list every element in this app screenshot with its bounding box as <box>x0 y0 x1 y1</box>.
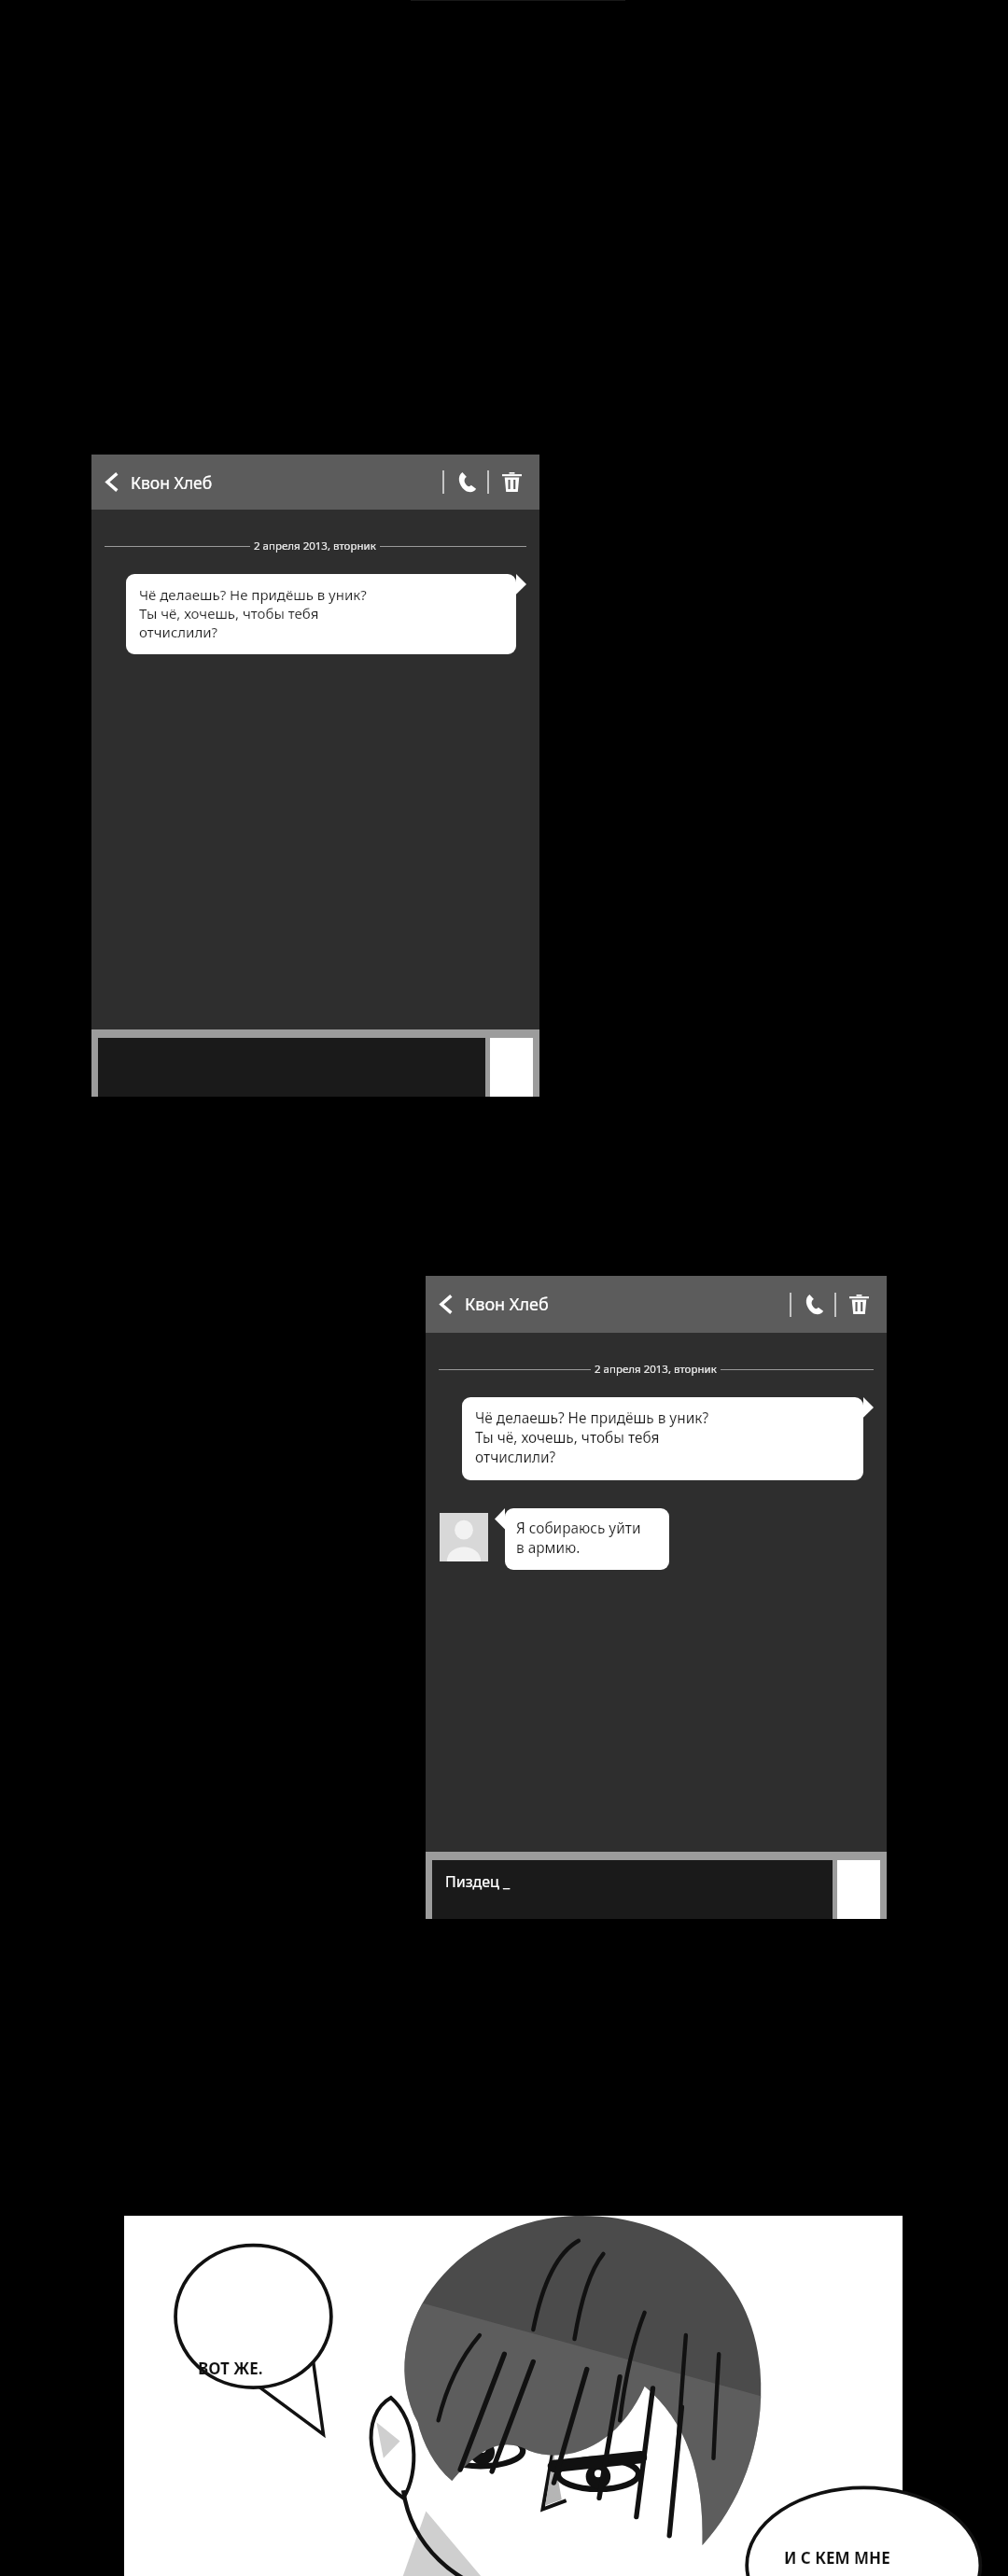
button[interactable]: Contact photo <box>440 1513 488 1561</box>
button[interactable]: Delete <box>836 1276 881 1333</box>
button[interactable]: Call <box>791 1276 834 1333</box>
staticText: Пиздец _ <box>445 1871 511 1892</box>
button[interactable]: Back <box>426 1276 465 1333</box>
button[interactable]: Чё делаешь? Не придёшь в уник? <box>126 574 526 654</box>
staticText: Ты чё, хочешь, чтобы тебя <box>475 1428 660 1448</box>
button[interactable]: Я собираюсь уйти <box>495 1508 669 1570</box>
staticText: ВОТ ЖЕ. <box>198 2358 263 2379</box>
button[interactable]: Delete <box>489 455 534 510</box>
button[interactable]: Back <box>91 455 131 510</box>
button[interactable]: Send <box>91 1029 539 1097</box>
button[interactable]: Call <box>444 455 487 510</box>
staticText: Квон Хлеб <box>131 471 213 494</box>
staticText: Чё делаешь? Не придёшь в уник? <box>139 585 367 604</box>
button[interactable]: Чё делаешь? Не придёшь в уник? <box>462 1397 874 1480</box>
staticText: Квон Хлеб <box>465 1293 549 1316</box>
button[interactable]: Send <box>837 1860 880 1919</box>
staticText: 2 апреля 2013, вторник <box>595 1362 717 1377</box>
staticText: Чё делаешь? Не придёшь в уник? <box>475 1408 709 1428</box>
staticText: отчислили? <box>139 623 218 641</box>
staticText: в армию. <box>516 1538 581 1558</box>
staticText: Я собираюсь уйти <box>516 1519 641 1538</box>
staticText: И С КЕМ МНЕ <box>784 2547 890 2569</box>
staticText: Ты чё, хочешь, чтобы тебя <box>139 604 319 623</box>
button[interactable]: Пиздец _ <box>426 1852 887 1919</box>
staticText: 2 апреля 2013, вторник <box>254 539 376 553</box>
staticText: отчислили? <box>475 1448 556 1467</box>
